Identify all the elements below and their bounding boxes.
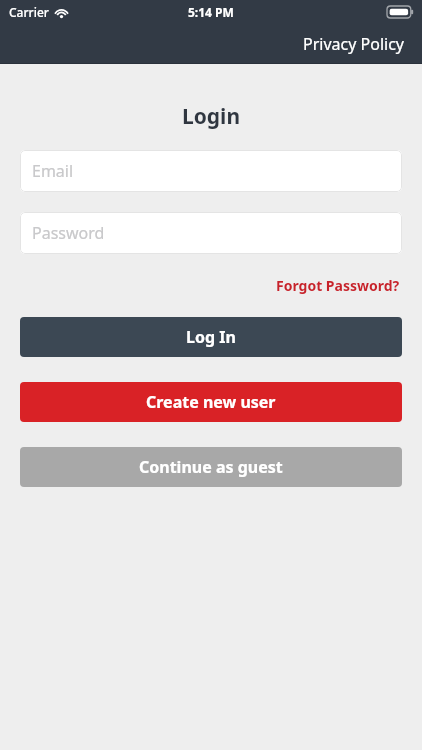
button[interactable]: Create new user: [20, 382, 402, 422]
staticText: Forgot Password?: [276, 276, 400, 295]
button[interactable]: Log In: [20, 317, 402, 357]
button[interactable]: Privacy Policy: [285, 27, 422, 61]
button[interactable]: Password: [20, 212, 402, 254]
button[interactable]: Email: [20, 150, 402, 192]
staticText: Email: [32, 160, 74, 182]
staticText: Privacy Policy: [303, 33, 404, 55]
button[interactable]: Continue as guest: [20, 447, 402, 487]
staticText: Password: [32, 222, 105, 244]
staticText: Login: [0, 102, 422, 131]
button[interactable]: Forgot Password?: [274, 272, 402, 299]
staticText: Create new user: [146, 391, 276, 413]
staticText: Log In: [186, 326, 236, 348]
staticText: 5:14 PM: [188, 4, 234, 20]
staticText: Continue as guest: [139, 456, 283, 478]
staticText: Carrier: [9, 4, 49, 20]
